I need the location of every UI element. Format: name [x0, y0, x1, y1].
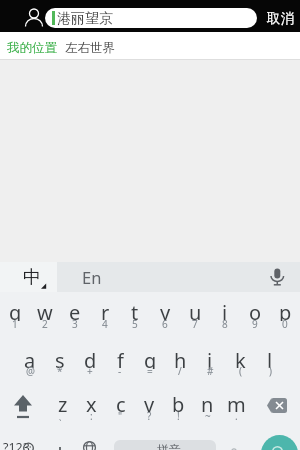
staticText: z — [58, 391, 68, 413]
button[interactable]: q — [0, 299, 30, 321]
staticText: 2 — [42, 317, 48, 331]
button[interactable]: k — [225, 347, 255, 369]
staticText: 4 — [102, 317, 108, 331]
staticText: 1 — [12, 317, 18, 331]
staticText: @ — [26, 364, 35, 378]
staticText: 、 — [58, 410, 68, 423]
staticText: i — [222, 299, 228, 321]
staticText: En — [82, 266, 102, 288]
button[interactable]: m — [222, 391, 251, 413]
button[interactable]: e — [60, 299, 90, 321]
staticText: ? — [147, 409, 152, 423]
button[interactable]: d — [75, 347, 105, 369]
staticText: 拼音 — [157, 442, 181, 450]
staticText: ?123 — [3, 439, 30, 450]
button[interactable] — [12, 393, 34, 420]
button[interactable]: l — [255, 347, 285, 369]
button[interactable] — [261, 435, 298, 450]
button[interactable]: 取消 — [250, 7, 300, 29]
button[interactable]: x — [77, 391, 106, 413]
staticText: . — [235, 409, 238, 423]
staticText: 3 — [72, 317, 78, 331]
button[interactable] — [265, 397, 290, 414]
button[interactable]: r — [90, 299, 120, 321]
staticText: o — [249, 299, 262, 321]
staticText: " — [118, 409, 123, 423]
staticText: r — [101, 299, 110, 321]
button[interactable] — [0, 262, 57, 292]
staticText: + — [87, 364, 93, 378]
button[interactable]: i — [210, 299, 240, 321]
staticText: w — [37, 299, 53, 321]
staticText: 中 — [23, 266, 41, 288]
button[interactable]: w — [30, 299, 60, 321]
button[interactable]: s — [45, 347, 75, 369]
staticText: 0 — [282, 317, 288, 331]
staticText: 左右世界 — [65, 40, 115, 56]
button[interactable]: u — [180, 299, 210, 321]
button[interactable] — [267, 265, 287, 290]
staticText: 5 — [132, 317, 138, 331]
button[interactable]: 拼音 — [114, 440, 216, 450]
button[interactable]: g — [135, 347, 165, 369]
staticText: 我的位置 — [7, 40, 57, 56]
staticText: l — [267, 347, 273, 369]
button[interactable]: n — [193, 391, 222, 413]
staticText: = — [147, 364, 153, 378]
staticText: k — [235, 347, 246, 369]
staticText: 港丽望京 — [57, 10, 113, 28]
staticText: : — [90, 409, 93, 423]
button[interactable]: v — [135, 391, 164, 413]
button[interactable]: a — [15, 347, 45, 369]
button[interactable]: j — [195, 347, 225, 369]
button[interactable] — [24, 7, 44, 27]
staticText: a — [24, 347, 36, 369]
button[interactable]: 左右世界 — [62, 36, 118, 59]
staticText: 8 — [222, 317, 228, 331]
button[interactable]: z — [48, 391, 77, 413]
button[interactable]: p — [270, 299, 300, 321]
staticText: q — [9, 299, 22, 321]
staticText: 取消 — [267, 10, 294, 27]
staticText: e — [69, 299, 81, 321]
staticText: t — [131, 299, 139, 321]
button[interactable]: f — [105, 347, 135, 369]
button[interactable]: En — [72, 266, 112, 288]
button[interactable]: 我的位置 — [4, 36, 60, 59]
staticText: p — [279, 299, 292, 321]
staticText: - — [118, 364, 122, 378]
staticText: * — [57, 364, 63, 378]
button[interactable] — [229, 447, 239, 450]
staticText: x — [86, 391, 97, 413]
staticText: 6 — [162, 317, 168, 331]
button[interactable]: o — [240, 299, 270, 321]
staticText: f — [117, 347, 124, 369]
staticText: u — [189, 299, 202, 321]
staticText: j — [207, 347, 213, 369]
button[interactable]: ?123 — [0, 436, 33, 450]
button[interactable]: 港丽望京 — [45, 8, 257, 28]
staticText: n — [201, 391, 214, 413]
staticText: y — [160, 299, 171, 321]
button[interactable]: h — [165, 347, 195, 369]
button[interactable] — [23, 443, 34, 450]
staticText: d — [84, 347, 97, 369]
button[interactable] — [81, 441, 98, 450]
button[interactable]: b — [164, 391, 193, 413]
staticText: v — [144, 391, 155, 413]
button[interactable]: c — [106, 391, 135, 413]
staticText: ! — [177, 409, 180, 423]
button[interactable]: y — [150, 299, 180, 321]
staticText: h — [174, 347, 187, 369]
staticText: b — [172, 391, 185, 413]
staticText: g — [144, 347, 157, 369]
staticText: c — [116, 391, 126, 413]
staticText: ~ — [205, 409, 211, 423]
staticText: ( — [239, 364, 242, 378]
staticText: / — [178, 364, 182, 378]
staticText: s — [55, 347, 65, 369]
button[interactable]: t — [120, 299, 150, 321]
staticText: m — [227, 391, 246, 413]
staticText: 9 — [252, 317, 258, 331]
staticText: # — [207, 364, 214, 378]
